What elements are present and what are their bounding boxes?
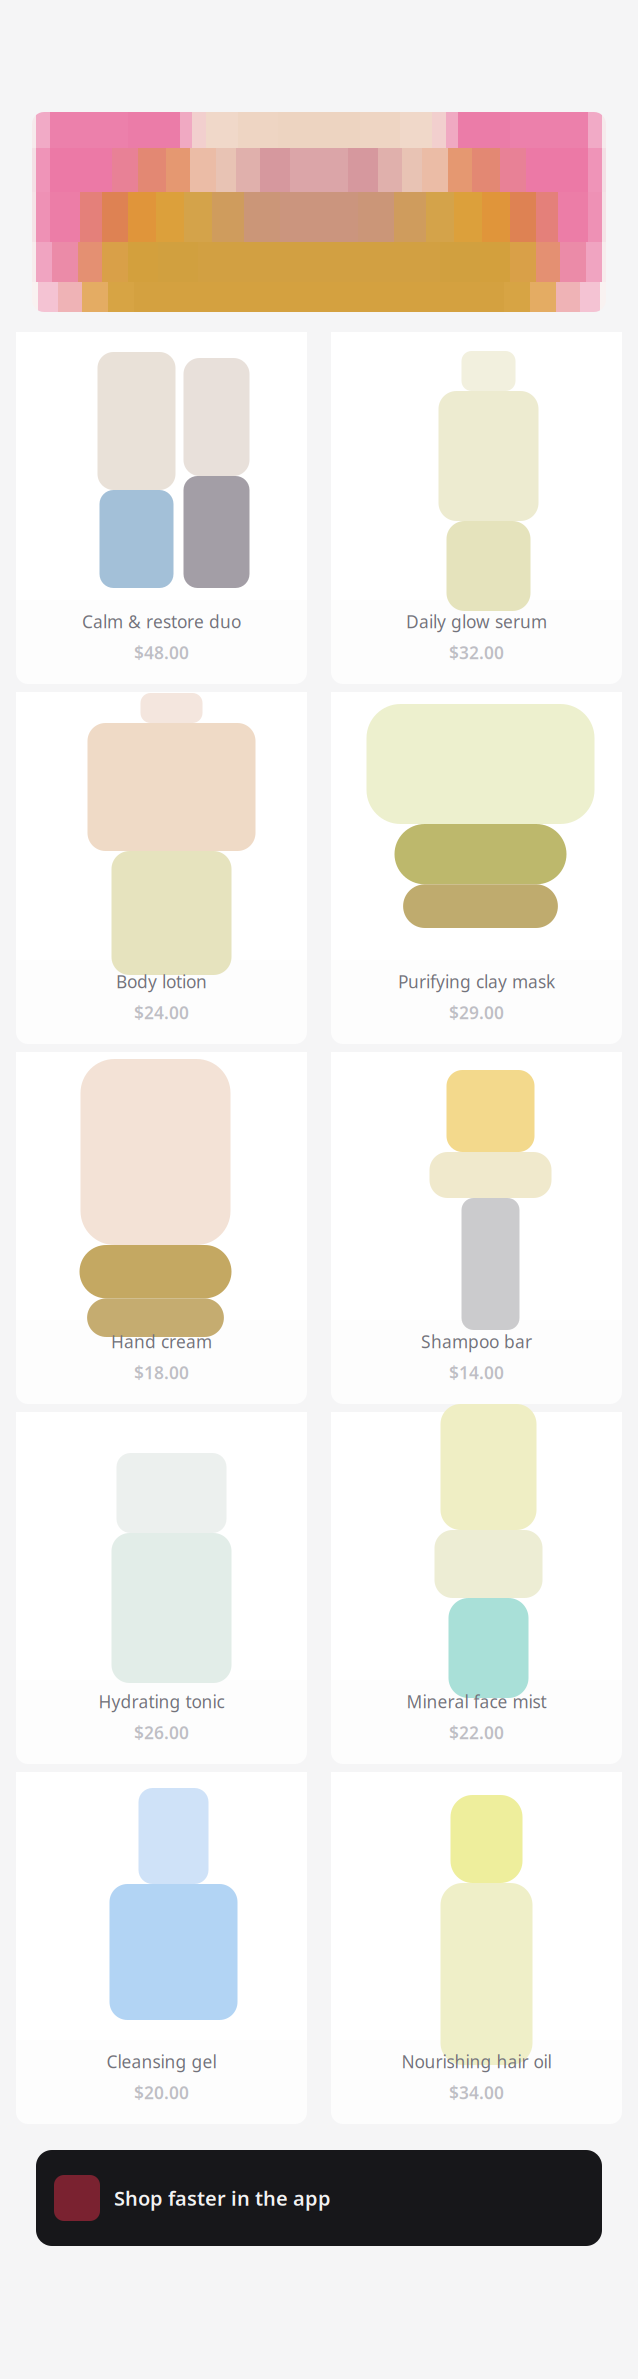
staticText: $29.00: [449, 1001, 504, 1024]
staticText: Nourishing hair oil: [401, 2050, 551, 2073]
button[interactable]: Shop faster in the app: [36, 2150, 602, 2246]
staticText: $18.00: [134, 1361, 189, 1384]
staticText: Mineral face mist: [406, 1690, 546, 1713]
staticText: $24.00: [134, 1001, 189, 1024]
staticText: $14.00: [449, 1361, 504, 1384]
button[interactable]: Body lotion: [16, 692, 307, 1044]
button[interactable]: Shampoo bar: [331, 1052, 622, 1404]
staticText: $22.00: [449, 1721, 504, 1744]
button[interactable]: Purifying clay mask: [331, 692, 622, 1044]
button[interactable]: Hydrating tonic: [16, 1412, 307, 1764]
button[interactable]: Daily glow serum: [331, 332, 622, 684]
button[interactable]: Featured promotion: [32, 112, 606, 312]
staticText: $26.00: [134, 1721, 189, 1744]
button[interactable]: Nourishing hair oil: [331, 1772, 622, 2124]
staticText: $32.00: [449, 641, 504, 664]
staticText: $20.00: [134, 2081, 189, 2104]
staticText: $48.00: [134, 641, 189, 664]
staticText: Body lotion: [116, 970, 207, 993]
button[interactable]: Cleansing gel: [16, 1772, 307, 2124]
staticText: Shop faster in the app: [114, 2185, 331, 2211]
staticText: Cleansing gel: [106, 2050, 216, 2073]
button[interactable]: Calm & restore duo: [16, 332, 307, 684]
button[interactable]: Hand cream: [16, 1052, 307, 1404]
staticText: Calm & restore duo: [82, 610, 241, 633]
staticText: Hydrating tonic: [98, 1690, 224, 1713]
staticText: Shampoo bar: [421, 1330, 532, 1353]
staticText: $34.00: [449, 2081, 504, 2104]
staticText: Hand cream: [111, 1330, 212, 1353]
button[interactable]: Mineral face mist: [331, 1412, 622, 1764]
staticText: Purifying clay mask: [398, 970, 555, 993]
staticText: Daily glow serum: [406, 610, 547, 633]
